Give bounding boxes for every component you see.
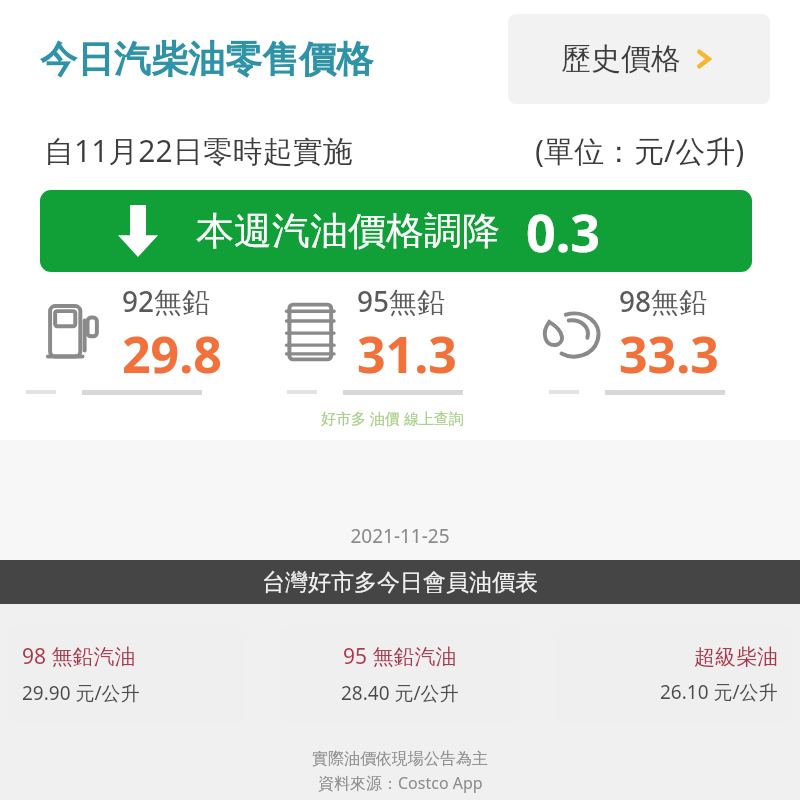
button[interactable]: 超級柴油 <box>554 625 792 723</box>
staticText: 實際油價依現場公告為主 <box>312 749 488 769</box>
staticText: 95無鉛 <box>357 282 446 320</box>
staticText: 92無鉛 <box>122 282 211 320</box>
staticText: 資料來源：Costco App <box>318 772 483 794</box>
staticText: 31.3 <box>357 320 457 382</box>
staticText: 好市多 油價 線上查詢 <box>0 408 785 428</box>
button[interactable]: 95 無鉛汽油 <box>281 625 519 723</box>
staticText: 0.3 <box>526 196 601 267</box>
staticText: 98無鉛 <box>619 282 708 320</box>
staticText: 98 無鉛汽油 <box>22 642 136 671</box>
staticText: (單位：元/公升) <box>535 130 745 171</box>
staticText: 29.8 <box>122 320 222 382</box>
staticText: 95 無鉛汽油 <box>343 642 457 671</box>
button[interactable]: 歷史價格 <box>508 14 770 104</box>
staticText: 33.3 <box>619 320 719 382</box>
staticText: 自11月22日零時起實施 <box>44 130 353 171</box>
staticText: 今日汽柴油零售價格 <box>40 36 373 83</box>
staticText: 本週汽油價格調降 <box>196 207 500 255</box>
staticText: 29.90 元/公升 <box>22 680 140 706</box>
staticText: 28.40 元/公升 <box>341 680 459 706</box>
staticText: 26.10 元/公升 <box>660 679 778 705</box>
staticText: 歷史價格 <box>561 40 681 78</box>
staticText: 2021-11-25 <box>0 523 800 549</box>
button[interactable]: 98 無鉛汽油 <box>8 625 246 723</box>
staticText: 超級柴油 <box>694 644 778 670</box>
staticText: 台灣好市多今日會員油價表 <box>262 568 538 597</box>
